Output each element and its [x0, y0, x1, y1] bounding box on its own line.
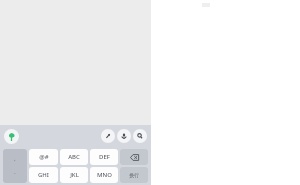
button[interactable]: DEF [90, 149, 118, 165]
staticText: MNO [97, 171, 112, 179]
staticText: DEF [99, 153, 110, 161]
button[interactable]: Paste / clipboard [101, 129, 115, 143]
staticText: 换行 [129, 172, 139, 178]
staticText: , [14, 156, 16, 163]
staticText: @# [39, 153, 49, 161]
staticText: JKL [70, 171, 79, 179]
button[interactable]: JKL [60, 167, 88, 183]
button[interactable]: MNO [90, 167, 118, 183]
staticText: GHI [38, 171, 49, 179]
button[interactable]: Backspace [120, 149, 148, 165]
button[interactable]: Input method logo [4, 129, 19, 144]
button[interactable]: Search [133, 129, 147, 143]
button[interactable]: ABC [60, 149, 88, 165]
button[interactable]: 换行 [120, 167, 148, 183]
staticText: . [14, 169, 16, 176]
staticText: ABC [68, 153, 80, 161]
button[interactable]: @# [29, 149, 58, 165]
button[interactable]: Voice input [117, 129, 131, 143]
button[interactable]: GHI [29, 167, 58, 183]
